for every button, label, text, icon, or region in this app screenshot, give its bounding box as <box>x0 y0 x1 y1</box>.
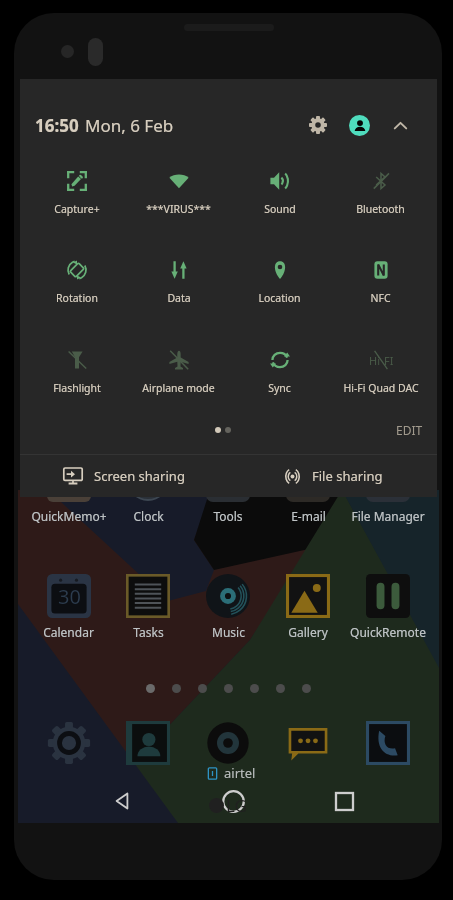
button[interactable]: EDIT <box>396 422 437 438</box>
button[interactable]: Settings <box>29 721 108 765</box>
button[interactable]: Hi <box>330 350 431 395</box>
staticText: ***VIRUS*** <box>146 202 211 216</box>
staticText: Gallery <box>288 624 328 640</box>
staticText: FI <box>384 353 394 368</box>
staticText: Clock <box>133 508 164 524</box>
staticText: Sync <box>268 381 291 395</box>
button[interactable]: Data <box>128 260 229 305</box>
staticText: Tasks <box>133 624 164 640</box>
staticText: Airplane mode <box>142 381 215 395</box>
button[interactable]: QuickMemo+ <box>29 458 108 524</box>
button[interactable]: Location <box>229 260 330 305</box>
staticText: Sound <box>264 202 296 216</box>
button[interactable]: Music <box>188 574 268 640</box>
button[interactable]: Collapse panel <box>382 107 418 143</box>
staticText: NFC <box>370 291 391 305</box>
staticText: Hi <box>369 353 380 368</box>
button[interactable]: Sound <box>229 171 330 216</box>
button[interactable]: Sync <box>229 350 330 395</box>
staticText: Rotation <box>56 291 98 305</box>
staticText: Mon, 6 Feb <box>85 114 174 137</box>
staticText: File sharing <box>312 467 383 485</box>
button[interactable]: Back <box>103 782 143 820</box>
button[interactable]: Messages <box>268 721 348 765</box>
staticText: Calendar <box>43 624 94 640</box>
staticText: Capture+ <box>54 202 100 216</box>
button[interactable]: Screen sharing <box>20 455 228 497</box>
staticText: QuickMemo+ <box>31 508 107 524</box>
button[interactable]: Camera <box>188 721 268 765</box>
button[interactable]: Home <box>213 782 253 820</box>
button[interactable]: Gallery <box>268 574 348 640</box>
staticText: Tools <box>213 508 243 524</box>
button[interactable]: File sharing <box>228 455 437 497</box>
button[interactable]: Capture+ <box>26 171 128 216</box>
staticText: QuickRemote <box>350 624 426 640</box>
button[interactable]: Clock <box>108 458 188 524</box>
staticText: airtel <box>224 764 256 782</box>
staticText: File Manager <box>351 508 425 524</box>
button[interactable]: Flashlight <box>26 350 128 395</box>
staticText: 30 <box>58 583 81 610</box>
staticText: Hi-Fi Quad DAC <box>343 381 419 395</box>
staticText: 16:50 <box>35 114 79 137</box>
button[interactable]: Phone <box>348 721 428 765</box>
button[interactable]: Bluetooth <box>330 171 431 216</box>
button[interactable]: NFC <box>330 260 431 305</box>
staticText: Screen sharing <box>94 467 185 485</box>
staticText: Flashlight <box>53 381 101 395</box>
button[interactable]: File Manager <box>348 458 428 524</box>
button[interactable]: 30 <box>29 574 108 640</box>
button[interactable]: E-mail <box>268 458 348 524</box>
button[interactable]: User profile <box>341 107 377 143</box>
staticText: Bluetooth <box>356 202 405 216</box>
staticText: E-mail <box>291 508 326 524</box>
staticText: Music <box>212 624 245 640</box>
button[interactable]: Recents <box>324 782 364 820</box>
button[interactable]: Airplane mode <box>128 350 229 395</box>
button[interactable]: Tools <box>188 458 268 524</box>
button[interactable]: Contacts <box>108 721 188 765</box>
button[interactable]: QuickRemote <box>348 574 428 640</box>
staticText: Data <box>167 291 191 305</box>
button[interactable]: ***VIRUS*** <box>128 171 229 216</box>
button[interactable]: Rotation <box>26 260 128 305</box>
staticText: Location <box>258 291 301 305</box>
button[interactable]: Settings <box>300 107 336 143</box>
staticText: LG <box>226 794 247 817</box>
button[interactable]: Tasks <box>108 574 188 640</box>
